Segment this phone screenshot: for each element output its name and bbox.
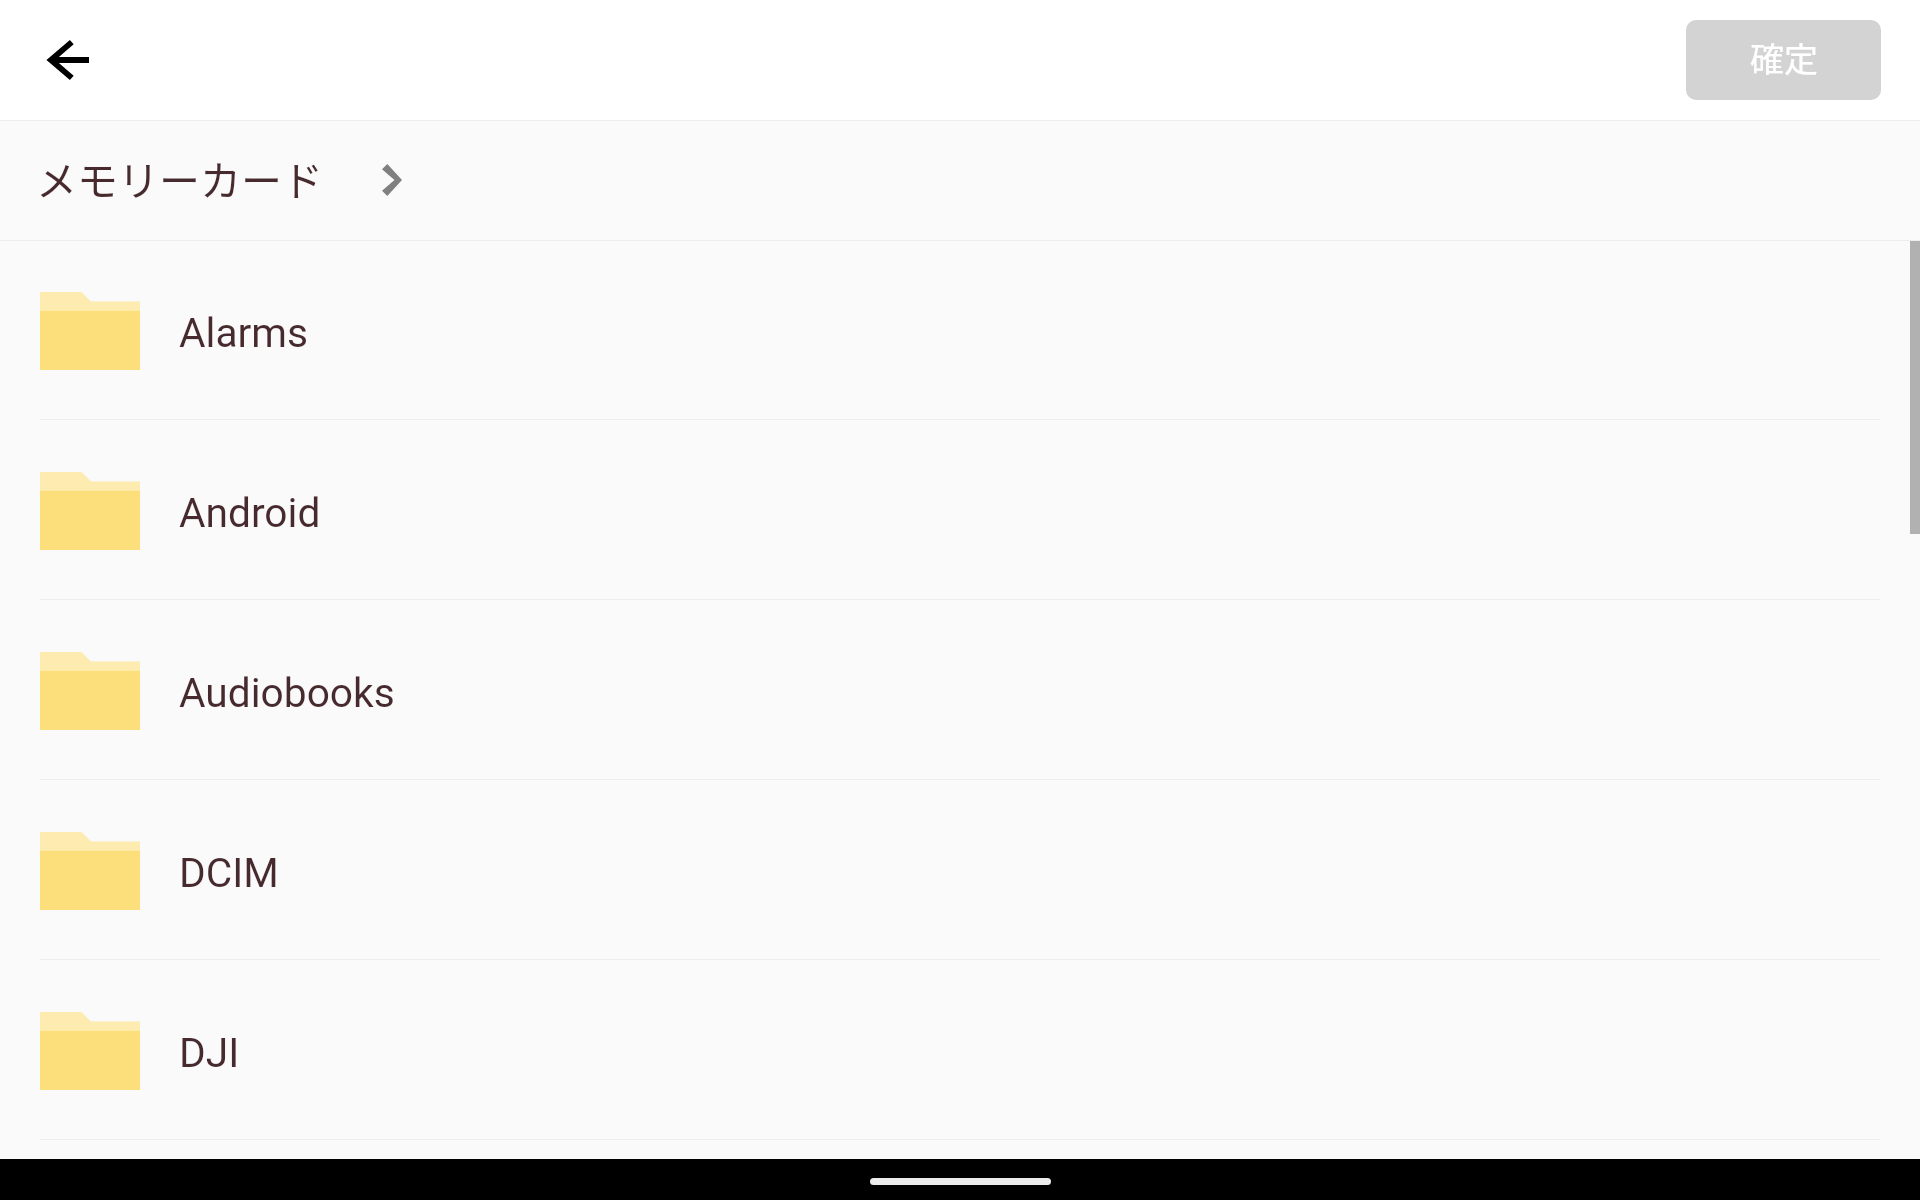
- staticText: DCIM: [179, 849, 279, 897]
- staticText: Android: [179, 489, 321, 537]
- staticText: DJI: [179, 1029, 240, 1077]
- staticText: メモリーカード: [36, 148, 323, 207]
- staticText: Audiobooks: [179, 669, 395, 717]
- staticText: 確定: [1750, 33, 1818, 82]
- button[interactable]: Alarms: [0, 240, 1920, 420]
- button[interactable]: DCIM: [0, 780, 1920, 960]
- button[interactable]: メモリーカード: [0, 121, 1920, 240]
- button[interactable]: Back: [28, 20, 108, 100]
- button[interactable]: DJI: [0, 960, 1920, 1140]
- button[interactable]: Audiobooks: [0, 600, 1920, 780]
- button[interactable]: 確定: [1686, 20, 1881, 100]
- button[interactable]: Android: [0, 420, 1920, 600]
- staticText: Alarms: [179, 309, 309, 357]
